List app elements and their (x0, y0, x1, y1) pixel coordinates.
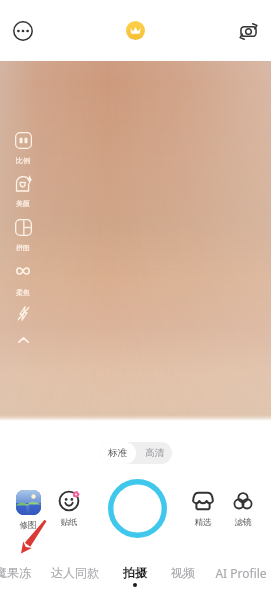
button[interactable]: 贴纸 (52, 490, 86, 528)
staticText: AI Profile (201, 565, 271, 581)
button[interactable]: 高清 (136, 442, 172, 464)
button[interactable]: 滤镜 (226, 490, 260, 528)
button[interactable]: 视频 (161, 565, 205, 580)
button[interactable]: 美颜 (6, 175, 40, 208)
button[interactable]: 拼图 (6, 219, 40, 252)
staticText: 视频 (161, 565, 205, 580)
button[interactable]: More options (8, 16, 38, 46)
button[interactable]: 修图 (11, 490, 45, 531)
staticText: 比例 (6, 156, 40, 165)
staticText: 标准 (108, 447, 127, 459)
button[interactable]: 精选 (186, 490, 220, 528)
button[interactable]: Shutter (108, 479, 167, 538)
button[interactable]: VIP (126, 21, 145, 40)
button[interactable]: 比例 (6, 132, 40, 165)
staticText: 贴纸 (52, 517, 86, 528)
button[interactable]: Switch camera (233, 16, 263, 46)
button[interactable]: 达人同款 (41, 565, 109, 580)
button[interactable]: 标准 (99, 442, 136, 464)
staticText: 拼图 (6, 243, 40, 252)
button[interactable]: Flash (8, 304, 38, 322)
staticText: 达人同款 (41, 565, 109, 580)
button[interactable]: Collapse tools (8, 333, 38, 347)
button[interactable]: AI Profile (201, 565, 271, 581)
staticText: 拍摄 (113, 565, 157, 580)
button[interactable]: 拍摄 (113, 565, 157, 587)
staticText: 美颜 (6, 199, 40, 208)
button[interactable]: 柔焦 (6, 264, 40, 297)
staticText: 修图 (11, 520, 45, 531)
staticText: 精选 (186, 517, 220, 528)
staticText: 滤镜 (226, 517, 260, 528)
button[interactable]: 魔果冻 (0, 565, 41, 580)
staticText: 魔果冻 (0, 565, 41, 580)
staticText: 柔焦 (6, 288, 40, 297)
staticText: 高清 (145, 447, 164, 459)
